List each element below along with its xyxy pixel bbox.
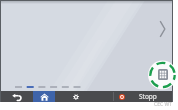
button[interactable]: Home bbox=[33, 91, 55, 102]
button[interactable]: Next page bbox=[159, 20, 166, 38]
staticText: CEC WT bbox=[154, 101, 172, 108]
button[interactable]: Keypad bbox=[147, 60, 178, 91]
button[interactable]: Back bbox=[0, 91, 33, 102]
button[interactable]: Stopp bbox=[114, 91, 157, 102]
staticText: Stopp bbox=[139, 92, 157, 101]
button[interactable]: Settings bbox=[55, 91, 97, 102]
